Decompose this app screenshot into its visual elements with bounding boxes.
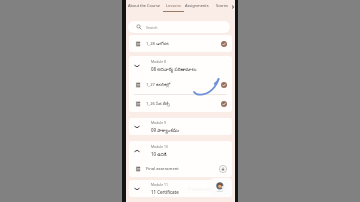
staticText: 1_27 కదలికల్లో [146,82,171,88]
other: Expand [134,63,140,69]
button[interactable]: Expand [129,180,232,197]
button[interactable]: More tabs [230,2,235,11]
staticText: Search [146,25,158,30]
button[interactable]: Final assessment [129,161,232,177]
staticText: Final assessment [146,166,179,172]
button[interactable]: 1_27 కదలికల్లో [129,75,232,94]
other: Expand [134,186,140,192]
staticText: Module 9 [151,120,166,125]
staticText: Module 8 [151,59,166,64]
button[interactable]: Scores [214,0,230,13]
button[interactable]: Lessons [163,0,184,13]
staticText: 08 అనివార్య పరిణామాలు [151,66,197,73]
staticText: PoweredBy [188,185,221,193]
button[interactable]: 1_26 సేద తీర్చే [129,95,232,112]
staticText: Scores [216,3,228,8]
button[interactable]: Search [128,21,230,33]
button[interactable]: About the Course [127,0,161,13]
staticText: About the Course [128,3,160,8]
staticText: Lessons [166,3,181,8]
staticText: 09 పాఠ్యాంశము [151,127,180,134]
staticText: 11 Certificate [151,189,179,195]
button[interactable]: Assignments [184,0,209,13]
staticText: Module 11 [151,182,168,187]
button[interactable]: Expand [129,56,232,75]
other: Expand [134,148,140,154]
button[interactable]: 1_28 ఆలోచన [129,35,232,52]
button[interactable]: Expand [129,118,232,135]
staticText: 10 ఉనికి [151,151,167,158]
staticText: 1_28 ఆలోచన [146,41,169,47]
button[interactable]: Expand [129,141,232,161]
staticText: Module 10 [151,144,168,149]
staticText: Assignments [185,3,209,8]
button[interactable]: Video call participant [211,178,232,196]
other: Expand [134,124,140,130]
staticText: 1_26 సేద తీర్చే [146,101,170,107]
